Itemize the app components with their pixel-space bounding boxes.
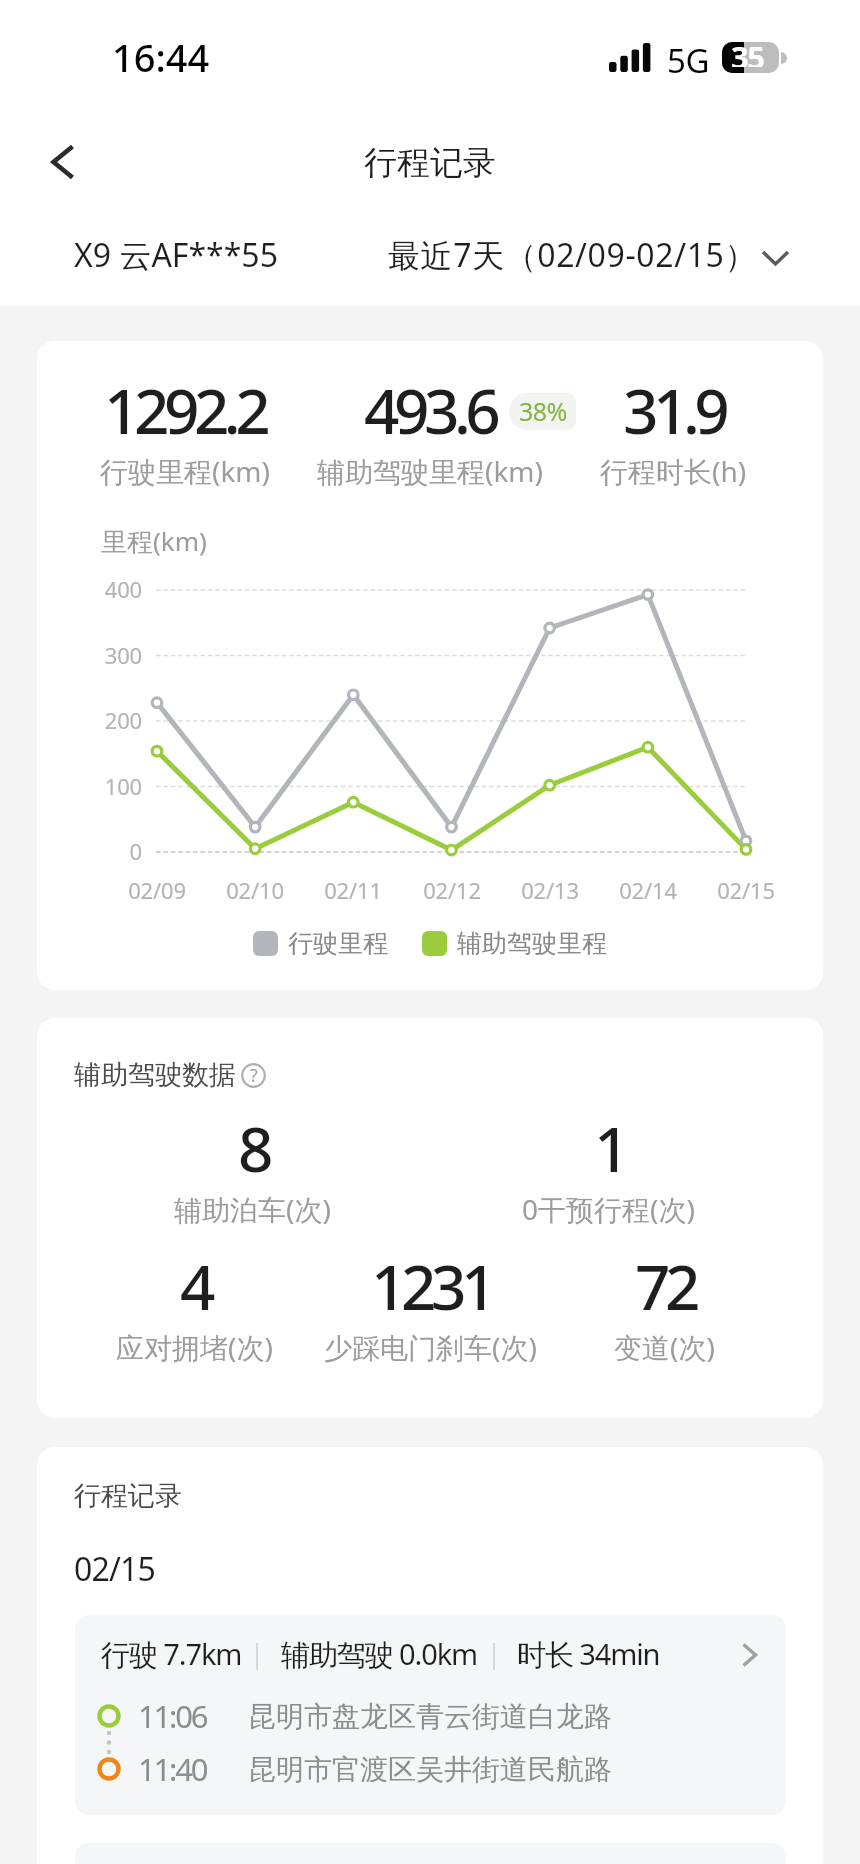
staticText: 0干预行程(次) xyxy=(522,1190,695,1228)
staticText: 400 xyxy=(62,574,142,604)
staticText: 02/14 xyxy=(598,875,698,905)
staticText: 02/15 xyxy=(74,1547,156,1591)
staticText: 38% xyxy=(519,394,567,428)
staticText: 变道(次) xyxy=(614,1328,715,1366)
staticText: 辅助泊车(次) xyxy=(174,1190,331,1228)
staticText: 31.9 xyxy=(623,368,725,452)
staticText: 100 xyxy=(62,771,142,801)
staticText: 02/15 xyxy=(696,875,796,905)
button[interactable]: 查看行程详情 xyxy=(727,1632,771,1678)
staticText: 行程记录 xyxy=(74,1479,182,1513)
staticText: 493.6 xyxy=(364,368,496,452)
staticText: 应对拥堵(次) xyxy=(116,1328,273,1366)
button[interactable]: 最近7天（02/09-02/15） xyxy=(388,233,790,277)
staticText: 行程时长(h) xyxy=(600,452,747,490)
staticText: ? xyxy=(250,1063,258,1088)
staticText: 行驶 7.7km xyxy=(101,1634,242,1674)
staticText: 昆明市官渡区吴井街道民航路 xyxy=(248,1752,612,1787)
staticText: 72 xyxy=(635,1244,695,1328)
staticText: 16:44 xyxy=(112,31,210,83)
staticText: 1 xyxy=(594,1106,624,1190)
button[interactable]: 说明 xyxy=(241,1063,266,1088)
staticText: 8 xyxy=(238,1106,268,1190)
staticText: 辅助驾驶数据 xyxy=(74,1058,236,1092)
staticText: 1231 xyxy=(371,1244,491,1328)
staticText: 11:40 xyxy=(138,1748,207,1790)
staticText: 02/11 xyxy=(303,875,403,905)
staticText: 行程记录 xyxy=(364,142,496,184)
staticText: 0 xyxy=(62,836,142,866)
staticText: 最近7天（02/09-02/15） xyxy=(388,233,758,277)
button[interactable]: Back xyxy=(31,130,95,194)
staticText: 02/12 xyxy=(402,875,502,905)
staticText: 5G xyxy=(667,38,709,83)
staticText: 时长 34min xyxy=(517,1634,660,1674)
staticText: 辅助驾驶里程 xyxy=(457,928,607,959)
staticText: 11:06 xyxy=(138,1695,207,1737)
staticText: 200 xyxy=(62,705,142,735)
staticText: 辅助驾驶 0.0km xyxy=(281,1634,478,1674)
staticText: 35 xyxy=(731,36,764,67)
staticText: 昆明市盘龙区青云街道白龙路 xyxy=(248,1699,612,1734)
staticText: 行驶里程 xyxy=(288,928,388,959)
staticText: X9 云AF***55 xyxy=(74,233,278,277)
staticText: 02/13 xyxy=(500,875,600,905)
staticText: 行驶里程(km) xyxy=(100,452,270,490)
staticText: 里程(km) xyxy=(101,523,207,559)
staticText: 300 xyxy=(62,640,142,670)
staticText: 4 xyxy=(180,1244,210,1328)
staticText: 辅助驾驶里程(km) xyxy=(317,452,543,490)
staticText: 1292.2 xyxy=(104,368,266,452)
staticText: 少踩电门刹车(次) xyxy=(324,1328,537,1366)
staticText: 02/10 xyxy=(205,875,305,905)
button[interactable]: 行驶 7.7km xyxy=(75,1615,786,1815)
staticText: 02/09 xyxy=(107,875,207,905)
